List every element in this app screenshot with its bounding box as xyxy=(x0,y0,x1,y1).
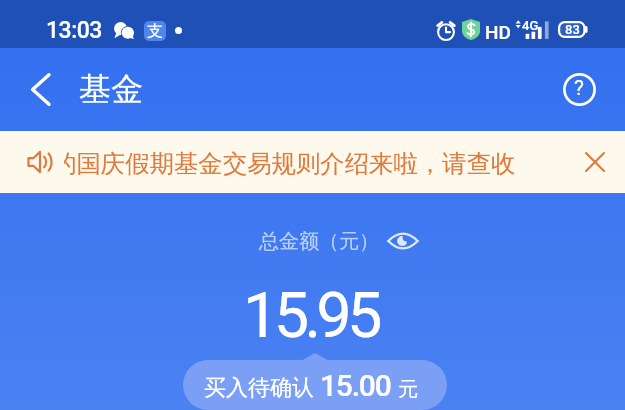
staticText: 基金 xyxy=(79,69,143,109)
staticText: HD xyxy=(485,21,511,43)
staticText: 元 xyxy=(398,377,418,402)
staticText: ? xyxy=(574,76,584,101)
staticText: 支 xyxy=(147,21,163,41)
staticText: 13:03 xyxy=(46,17,102,44)
staticText: 总金额（元） xyxy=(259,229,379,254)
staticText: 买入待确认 xyxy=(204,374,314,402)
button[interactable]: 买入待确认 xyxy=(183,353,447,410)
staticText: 15.00 xyxy=(320,368,391,403)
button[interactable]: Back xyxy=(13,61,69,117)
staticText: 83 xyxy=(565,22,580,37)
button[interactable]: Close xyxy=(578,145,612,179)
staticText: 的国庆假期基金交易规则介绍来啦，请查收 xyxy=(64,149,516,180)
button[interactable]: Toggle amount visibility xyxy=(385,223,421,259)
staticText: 4G xyxy=(522,18,539,33)
button[interactable]: Help xyxy=(557,67,601,111)
staticText: 15.95 xyxy=(243,279,378,353)
